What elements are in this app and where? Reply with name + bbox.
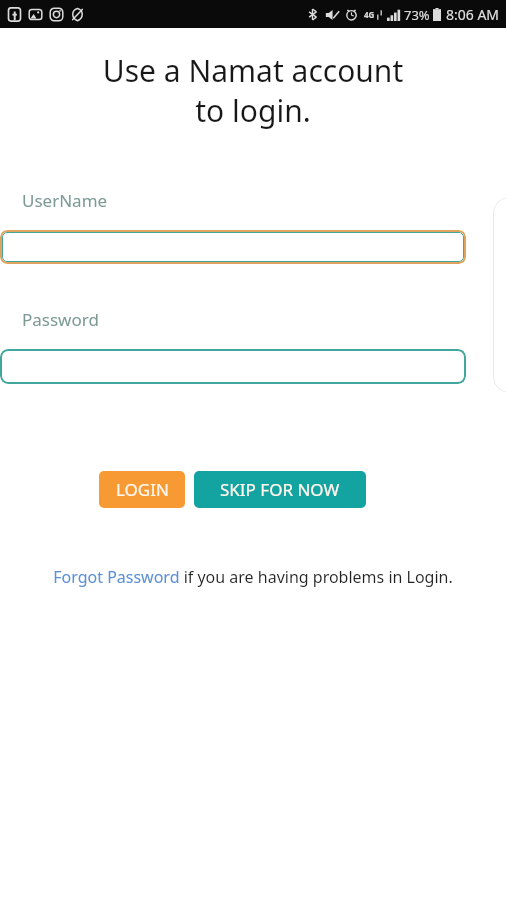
button[interactable]: SKIP FOR NOW bbox=[194, 471, 366, 508]
staticText: 4G bbox=[364, 9, 375, 20]
staticText: UserName bbox=[22, 189, 108, 212]
staticText: Use a Namat account to login. bbox=[0, 50, 506, 131]
staticText: SKIP FOR NOW bbox=[220, 478, 340, 501]
staticText: Forgot Password if you are having proble… bbox=[34, 566, 472, 588]
staticText: Password bbox=[22, 308, 99, 331]
staticText: LOGIN bbox=[116, 478, 169, 501]
button[interactable]: LOGIN bbox=[99, 471, 185, 508]
button[interactable]: Password input field bbox=[0, 349, 466, 384]
staticText: 8:06 AM bbox=[446, 5, 500, 24]
staticText: 73% bbox=[404, 6, 430, 24]
button[interactable]: UserName input field bbox=[2, 232, 464, 262]
